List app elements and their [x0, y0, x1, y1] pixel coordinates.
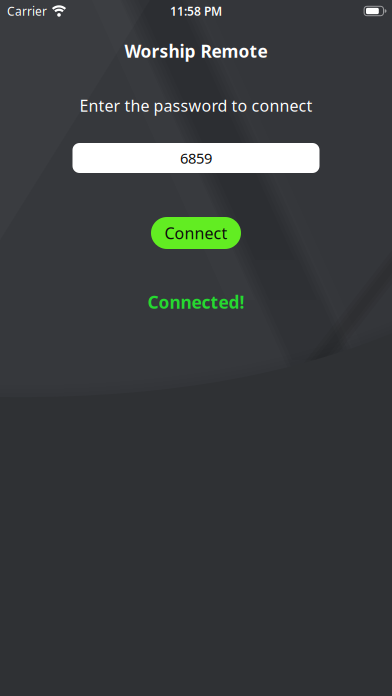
staticText: Connected!	[147, 290, 244, 313]
staticText: Enter the password to connect	[79, 95, 312, 116]
staticText: Carrier	[7, 3, 47, 19]
button[interactable]: Connect	[151, 217, 241, 249]
staticText: Connect	[164, 222, 227, 244]
staticText: 11:58 PM	[170, 3, 222, 19]
staticText: 6859	[180, 148, 212, 168]
button[interactable]: 6859	[72, 143, 319, 173]
staticText: Worship Remote	[124, 39, 267, 62]
